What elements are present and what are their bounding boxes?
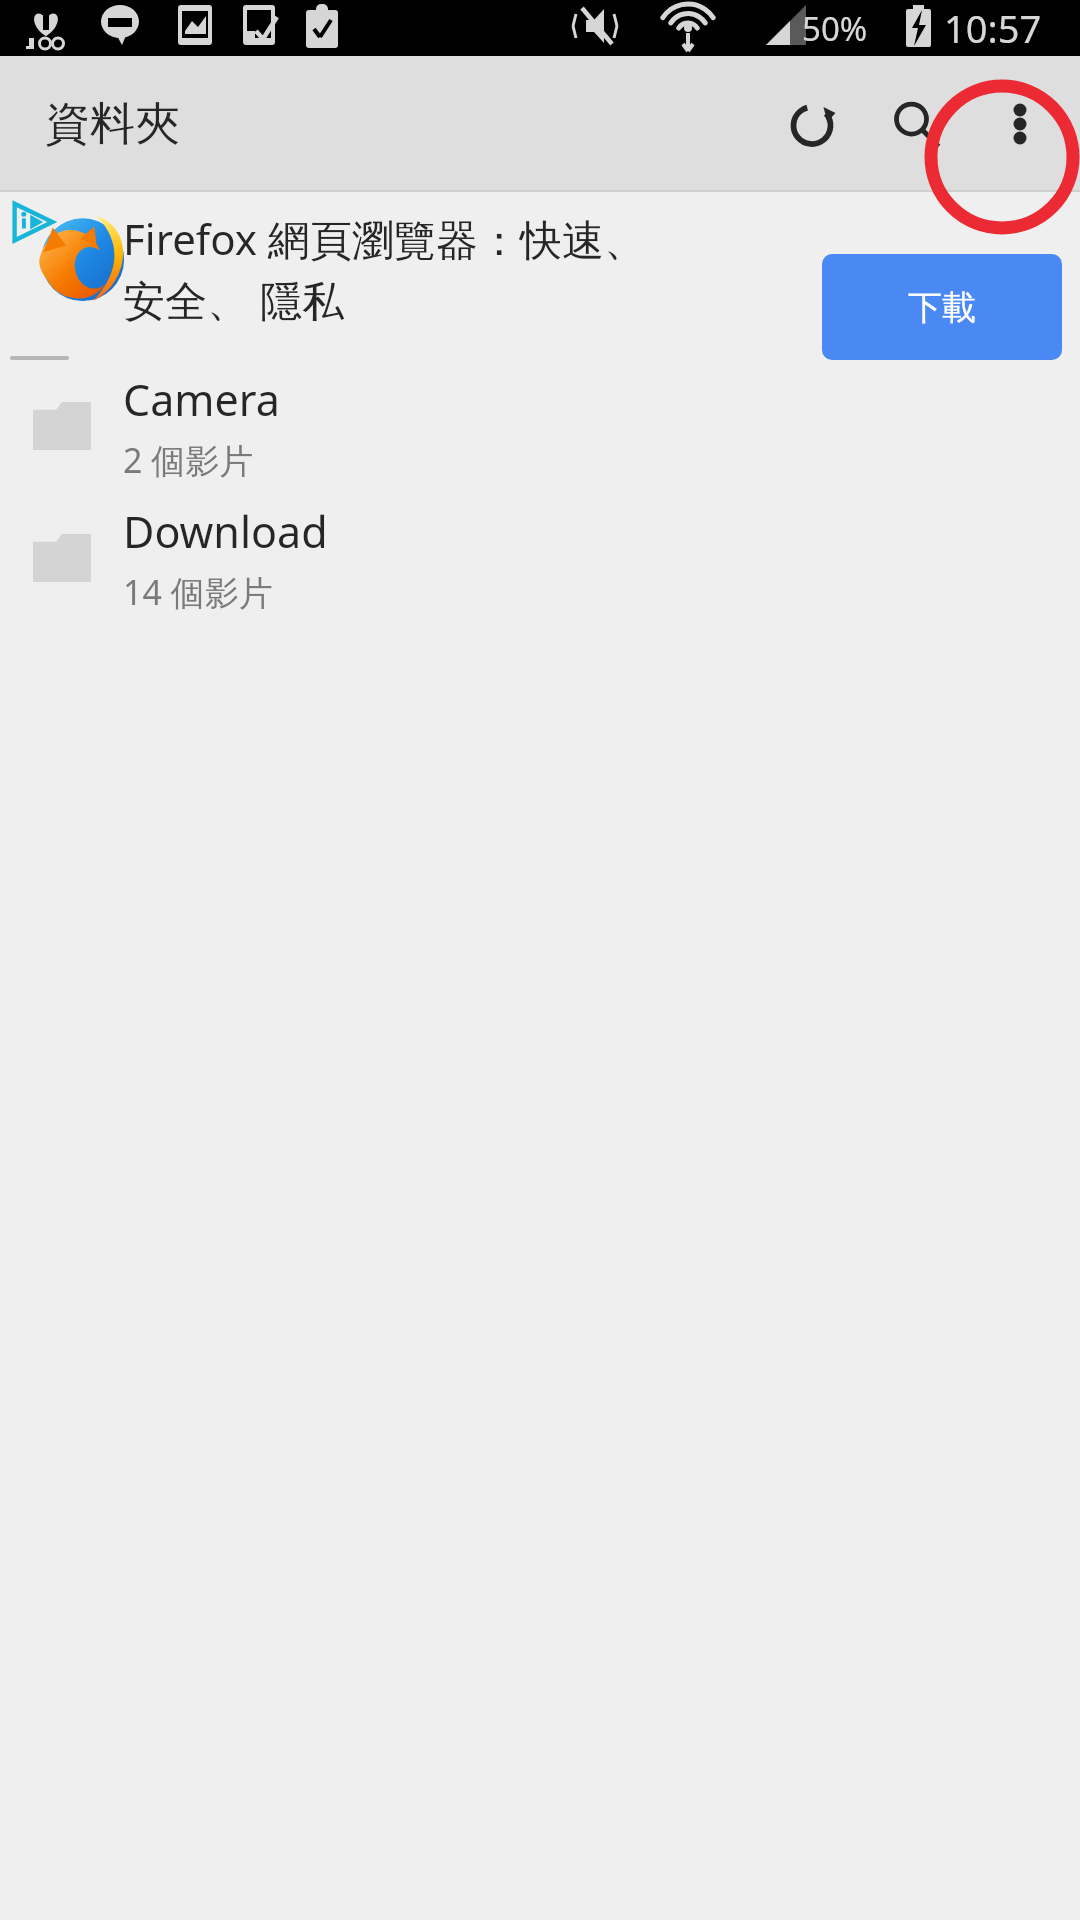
staticText: 2 個影片 — [123, 437, 254, 483]
staticText: 下載 — [908, 286, 976, 329]
staticText: Firefox 網頁瀏覽器：快速、 — [123, 210, 646, 267]
staticText: 安全、 隱私 — [123, 271, 344, 328]
staticText: 50% — [802, 6, 868, 51]
button[interactable]: More options — [968, 72, 1072, 176]
button[interactable]: AD — [0, 192, 1080, 360]
staticText: 10:57 — [944, 2, 1042, 54]
staticText: 14 個影片 — [123, 569, 273, 615]
button[interactable]: Download — [0, 492, 1080, 624]
button[interactable]: Search — [864, 72, 968, 176]
button[interactable]: 下載 — [822, 254, 1062, 360]
button[interactable]: Camera — [0, 360, 1080, 492]
staticText: Camera — [123, 370, 280, 429]
button[interactable]: Refresh — [760, 72, 864, 176]
staticText: Download — [123, 502, 328, 561]
staticText: 資料夾 — [45, 96, 180, 153]
